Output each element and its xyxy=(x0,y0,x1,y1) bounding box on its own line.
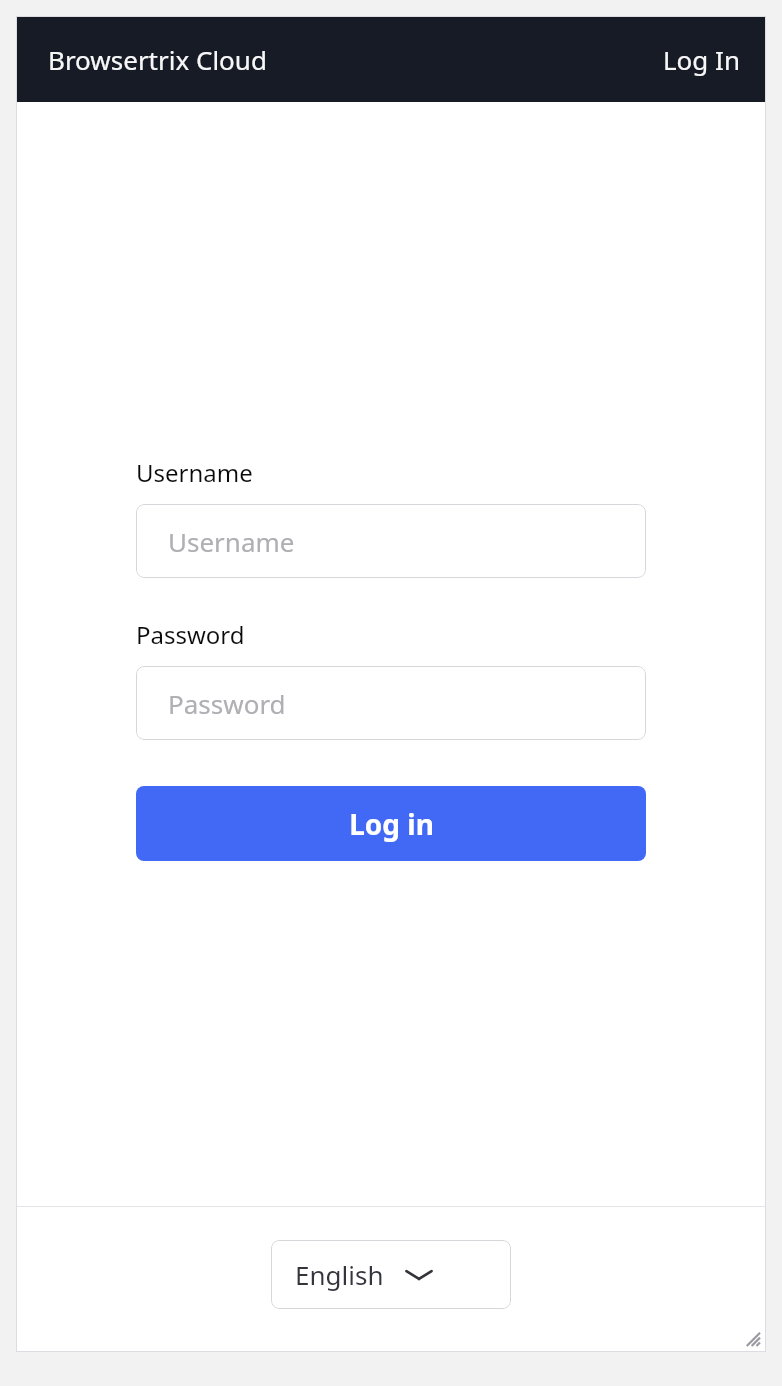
button[interactable]: Log in xyxy=(136,786,646,861)
staticText: English xyxy=(295,1257,384,1292)
button[interactable]: Browsertrix Cloud xyxy=(48,42,267,77)
button[interactable]: Username xyxy=(136,504,646,578)
button[interactable]: Log In xyxy=(653,34,750,85)
staticText: Password xyxy=(136,618,245,651)
button[interactable]: English xyxy=(271,1240,511,1309)
staticText: Log in xyxy=(349,805,434,843)
other: Expand language list xyxy=(404,1266,434,1284)
staticText: Log In xyxy=(663,42,740,77)
button[interactable]: Password xyxy=(136,666,646,740)
staticText: Browsertrix Cloud xyxy=(48,42,267,77)
staticText: Username xyxy=(136,456,253,489)
staticText: Password xyxy=(168,686,286,721)
staticText: Username xyxy=(168,524,295,559)
